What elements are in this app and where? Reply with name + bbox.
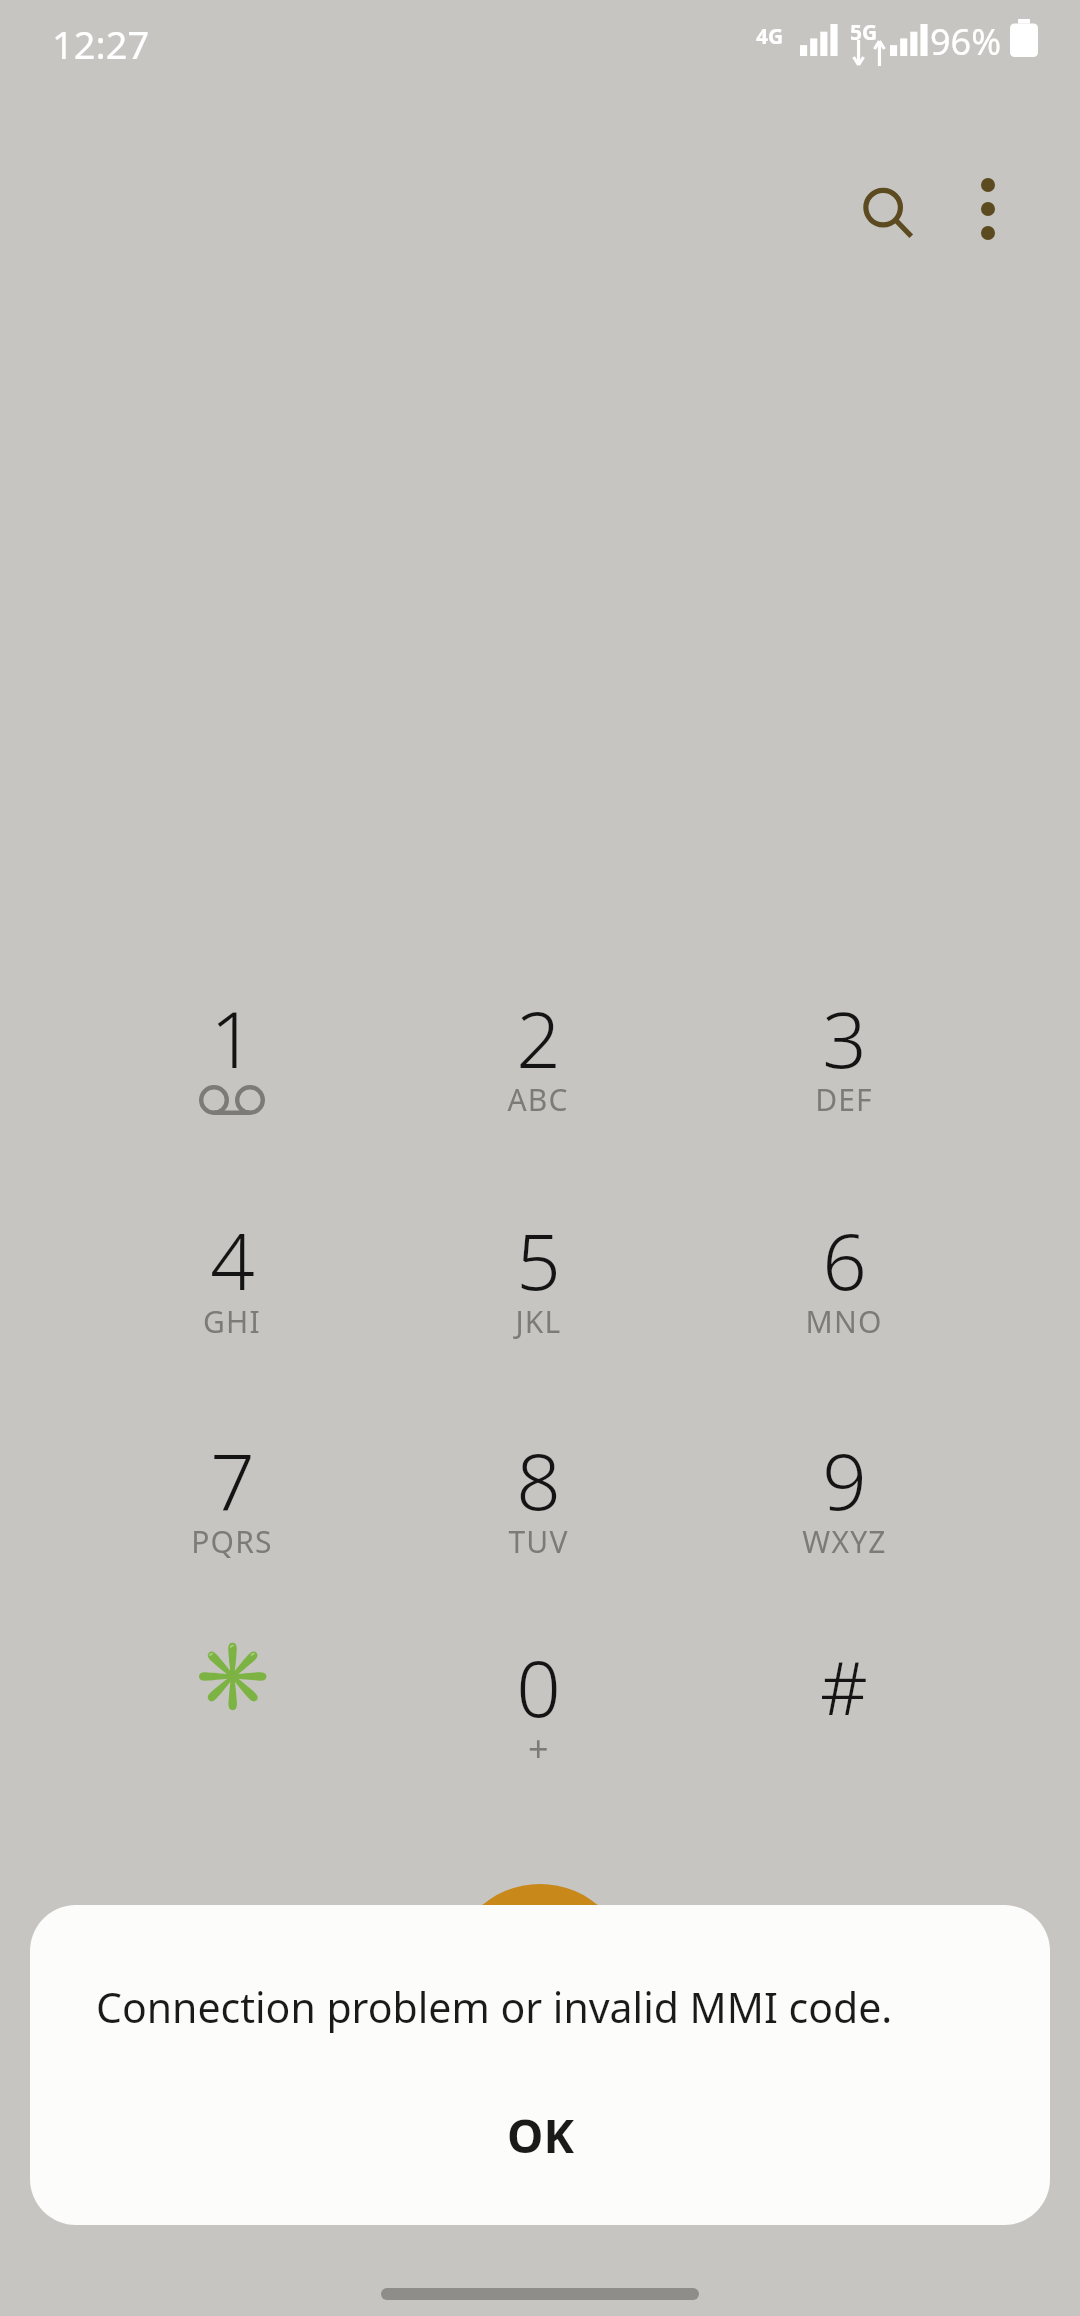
staticText: # — [820, 1636, 868, 1737]
staticText: 5G — [850, 18, 878, 47]
staticText: GHI — [203, 1301, 261, 1342]
button[interactable]: 1 — [102, 943, 362, 1153]
button[interactable]: 7 — [102, 1385, 362, 1595]
staticText: WXYZ — [802, 1521, 887, 1562]
staticText: 2 — [516, 985, 561, 1091]
staticText: TUV — [508, 1521, 569, 1562]
staticText: 7 — [210, 1427, 255, 1533]
button[interactable]: 9 — [714, 1385, 974, 1595]
staticText: 6 — [822, 1207, 867, 1313]
button[interactable]: 8 — [408, 1385, 668, 1595]
button[interactable]: Call — [450, 1884, 630, 2064]
staticText: + — [528, 1724, 549, 1773]
button[interactable]: 6 — [714, 1165, 974, 1375]
staticText: MNO — [805, 1301, 883, 1342]
button[interactable]: 4 — [102, 1165, 362, 1375]
button[interactable]: ✳ — [102, 1592, 362, 1802]
staticText: 4G — [756, 22, 784, 51]
staticText: 8 — [516, 1427, 561, 1533]
button[interactable]: More options — [934, 155, 1042, 263]
staticText: 0 — [516, 1634, 561, 1740]
staticText: 1 — [210, 985, 255, 1091]
staticText: 12:27 — [52, 18, 150, 70]
staticText: 3 — [822, 985, 867, 1091]
staticText: PQRS — [191, 1521, 273, 1562]
staticText: ✳ — [191, 1638, 274, 1715]
button[interactable]: 5 — [408, 1165, 668, 1375]
button[interactable]: 0 — [408, 1592, 668, 1802]
staticText: 9 — [822, 1427, 867, 1533]
button[interactable]: 2 — [408, 943, 668, 1153]
staticText: JKL — [515, 1301, 562, 1342]
button[interactable]: OK — [30, 2083, 1050, 2187]
staticText: ABC — [507, 1079, 569, 1120]
button[interactable]: # — [714, 1592, 974, 1802]
staticText: 5 — [516, 1207, 561, 1313]
staticText: 96% — [930, 17, 1002, 66]
button[interactable]: Search — [830, 155, 946, 271]
button[interactable]: 3 — [714, 943, 974, 1153]
staticText: DEF — [815, 1079, 873, 1120]
staticText: OK — [507, 2104, 574, 2167]
staticText: Connection problem or invalid MMI code. — [96, 1979, 893, 2035]
staticText: 4 — [210, 1207, 255, 1313]
